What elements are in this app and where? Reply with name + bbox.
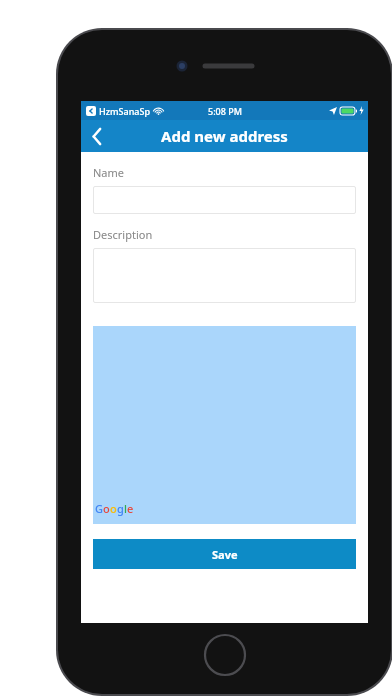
staticText: o [110,501,117,516]
button[interactable] [93,186,356,214]
button[interactable]: Back [81,120,113,152]
staticText: HzmSanaSp [99,105,150,117]
staticText: Save [212,547,238,562]
staticText: e [127,501,134,516]
staticText: l [124,501,127,516]
staticText: Add new address [161,126,288,146]
staticText: Name [93,165,125,180]
staticText: G [95,501,103,516]
staticText: o [103,501,110,516]
staticText: 5:08 PM [208,105,242,117]
staticText: g [117,501,124,516]
button[interactable] [93,248,356,303]
staticText: Description [93,227,153,242]
button[interactable]: G [93,326,356,524]
button[interactable]: Save [93,539,356,569]
